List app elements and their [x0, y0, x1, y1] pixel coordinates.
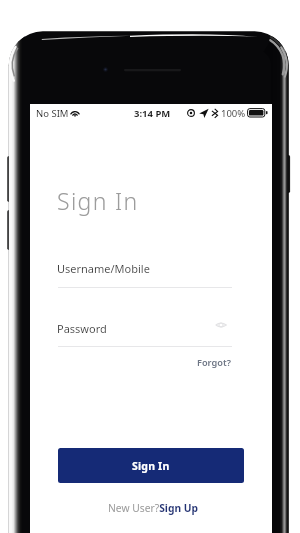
staticText: No SIM [36, 107, 69, 120]
staticText: Password [57, 321, 107, 336]
button[interactable]: Forgot? [197, 356, 231, 369]
staticText: 100% [221, 107, 246, 120]
staticText: 3:14 PM [134, 107, 171, 120]
staticText: Username/Mobile [57, 261, 150, 276]
button[interactable]: New User?Sign Up [108, 501, 199, 515]
staticText: Sign In [57, 185, 139, 216]
button[interactable]: Sign In [58, 448, 244, 483]
staticText: New User?Sign Up [108, 501, 199, 515]
staticText: Sign In [132, 459, 170, 473]
staticText: Forgot? [197, 356, 231, 369]
button[interactable]: Show password [215, 321, 227, 329]
